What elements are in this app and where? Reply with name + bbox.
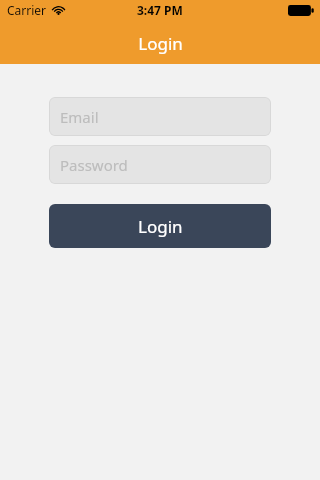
button[interactable]: Password <box>49 145 271 184</box>
staticText: Email <box>60 107 99 127</box>
staticText: 3:47 PM <box>137 2 183 18</box>
staticText: Login <box>138 32 183 55</box>
staticText: Carrier <box>7 2 47 18</box>
button[interactable]: Email <box>49 97 271 136</box>
staticText: Password <box>60 155 128 175</box>
button[interactable]: Login <box>49 204 271 248</box>
staticText: Login <box>138 215 183 238</box>
